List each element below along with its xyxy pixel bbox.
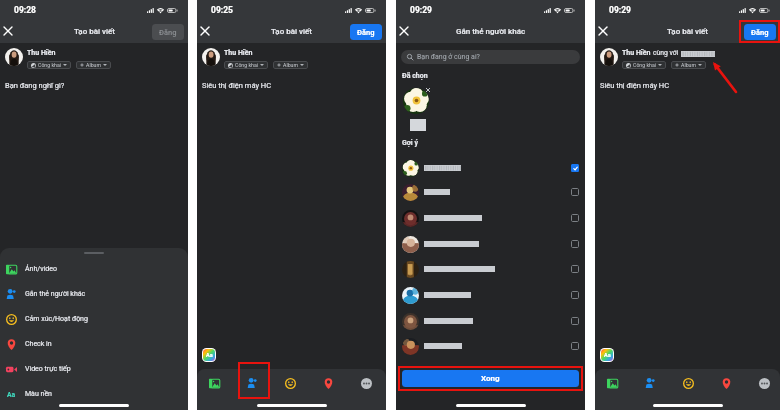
button[interactable]: Photo or video [603, 374, 621, 392]
button[interactable]: Ảnh/video [0, 256, 188, 281]
staticText: Bạn đang ở cùng ai? [417, 53, 480, 61]
button[interactable]: Close [595, 23, 611, 39]
button[interactable]: Close [396, 23, 412, 39]
staticText: Aa [604, 352, 611, 358]
staticText: Thu Hiền [224, 49, 253, 57]
button[interactable]: Đăng [744, 24, 776, 40]
staticText: Bạn đang nghĩ gì? [5, 81, 65, 90]
staticText: Công khai [633, 62, 656, 68]
button[interactable]: Cảm xúc/Hoạt động [0, 306, 188, 331]
staticText: Tạo bài viết [667, 27, 708, 36]
button[interactable] [396, 206, 585, 230]
staticText: Cảm xúc/Hoạt động [25, 315, 88, 323]
button[interactable]: Check in [717, 374, 735, 392]
button[interactable]: Background colour [601, 349, 613, 361]
staticText: Gắn thẻ người khác [456, 27, 526, 36]
button[interactable]: Album [76, 61, 111, 69]
staticText: Album [283, 62, 298, 68]
button[interactable]: Feeling or activity [281, 374, 299, 392]
button[interactable] [396, 232, 585, 256]
staticText: Đăng [159, 28, 177, 37]
button[interactable] [396, 180, 585, 204]
button[interactable] [396, 257, 585, 281]
staticText: Đã chọn [402, 72, 428, 80]
staticText: Ảnh/video [25, 265, 57, 273]
staticText: Video trực tiếp [25, 365, 71, 373]
button[interactable]: Tag people [641, 374, 659, 392]
button[interactable]: Close [197, 23, 213, 39]
staticText: Album [681, 62, 696, 68]
button[interactable]: Video trực tiếp [0, 356, 188, 381]
staticText: Thu Hiền [27, 49, 56, 57]
staticText: 09:25 [211, 5, 233, 15]
button[interactable]: Xong [402, 370, 579, 387]
staticText: Gắn thẻ người khác [25, 290, 86, 298]
button[interactable]: More options [357, 374, 375, 392]
button[interactable]: Album [671, 61, 706, 69]
button[interactable]: More options [755, 374, 773, 392]
button[interactable]: Tag people [243, 374, 261, 392]
staticText: 09:29 [410, 5, 432, 15]
staticText: Siêu thị điện máy HC [202, 81, 272, 90]
button[interactable]: Công khai [622, 61, 666, 69]
staticText: 09:28 [14, 5, 36, 15]
staticText: Đăng [357, 28, 375, 37]
button[interactable]: Đăng [152, 24, 184, 40]
staticText: Check in [25, 340, 52, 348]
button[interactable] [396, 283, 585, 307]
staticText: Công khai [235, 62, 258, 68]
button[interactable]: Gắn thẻ người khác [0, 281, 188, 306]
button[interactable]: Đăng [350, 24, 382, 40]
staticText: Thu Hiền [622, 49, 651, 57]
staticText: Xong [481, 374, 500, 383]
staticText: Album [86, 62, 101, 68]
staticText: cùng với [653, 49, 679, 57]
button[interactable]: Công khai [224, 61, 268, 69]
button[interactable]: Công khai [27, 61, 71, 69]
staticText: Aa [206, 352, 213, 358]
staticText: Tạo bài viết [74, 27, 115, 36]
button[interactable] [396, 309, 585, 333]
button[interactable] [396, 334, 585, 358]
staticText: Tạo bài viết [271, 27, 312, 36]
button[interactable]: Background colour [203, 349, 215, 361]
button[interactable]: Aa [0, 381, 188, 406]
staticText: Siêu thị điện máy HC [600, 81, 670, 90]
button[interactable]: Close [0, 23, 16, 39]
staticText: Aa [7, 391, 16, 399]
button[interactable]: Check in [319, 374, 337, 392]
button[interactable] [396, 156, 585, 180]
staticText: Công khai [38, 62, 61, 68]
button[interactable]: Bạn đang ở cùng ai? [401, 50, 580, 64]
button[interactable]: Album [273, 61, 308, 69]
button[interactable]: Check in [0, 331, 188, 356]
button[interactable]: Feeling or activity [679, 374, 697, 392]
staticText: Màu nền [25, 390, 52, 398]
staticText: Gợi ý [402, 139, 418, 147]
staticText: 09:29 [609, 5, 631, 15]
staticText: Đăng [751, 28, 769, 37]
button[interactable]: Photo or video [205, 374, 223, 392]
